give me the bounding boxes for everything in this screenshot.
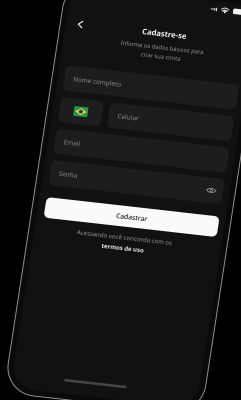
staticText: Nome completo	[62, 351, 241, 385]
button[interactable]: Voltar	[34, 125, 80, 177]
staticText: 10:09	[48, 10, 129, 52]
staticText: Informe os dados básicos para	[226, 190, 241, 220]
